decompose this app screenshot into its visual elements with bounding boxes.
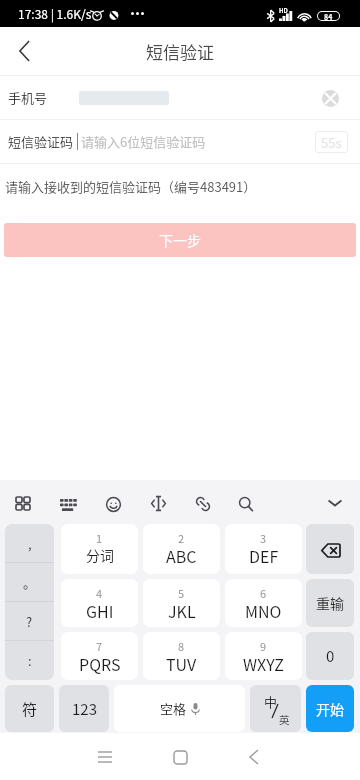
button[interactable]: 8 [143,632,220,680]
staticText: 。 [23,573,37,592]
staticText: DEF [249,544,279,567]
staticText: 2 [178,530,185,546]
staticText: 英 [279,712,290,727]
button[interactable] [306,524,354,574]
staticText: 短信验证 [146,39,214,64]
staticText: JKL [168,599,196,622]
staticText: HD [279,6,288,15]
button[interactable]: Clipboard [187,488,219,520]
staticText: 下一步 [159,230,201,250]
staticText: 55s [321,133,342,152]
button[interactable]: Move cursor [142,487,175,520]
staticText: ? [26,612,33,631]
staticText: 8 [178,638,185,654]
staticText: 请输入6位短信验证码 [81,132,206,151]
staticText: ABC [166,544,197,567]
button[interactable]: 4 [61,579,138,627]
button[interactable]: Home [160,737,200,777]
button[interactable]: 123 [59,685,109,732]
button[interactable]: 7 [61,632,138,680]
button[interactable]: 下一步 [4,223,356,257]
button[interactable]: Clear [318,86,342,110]
staticText: WXYZ [243,652,284,675]
button[interactable]: Emoji [97,488,130,521]
staticText: 重输 [316,593,344,613]
staticText: 空格 [160,699,187,718]
staticText: 123 [72,698,97,720]
staticText: TUV [166,652,197,675]
staticText: 1 [96,530,103,546]
staticText: 9 [260,638,267,654]
staticText: 分词 [86,545,114,565]
staticText: GHI [86,599,114,622]
staticText: 4 [96,585,103,601]
staticText: 中 [264,692,278,711]
staticText: 开始 [316,699,344,719]
staticText: 请输入接收到的短信验证码（编号483491） [5,177,257,196]
button[interactable]: 符 [5,685,54,732]
button[interactable]: ? [5,602,54,640]
button[interactable]: , [5,524,54,562]
button[interactable]: 重输 [306,579,354,627]
button[interactable]: Hide keyboard [319,490,351,516]
button[interactable]: 2 [143,524,220,574]
button[interactable]: 1 [61,524,138,574]
button[interactable]: 5 [143,579,220,627]
button[interactable]: 空格 [114,685,245,732]
staticText: 短信验证码 [8,132,74,151]
button[interactable]: Back [234,737,274,777]
staticText: 符 [22,698,38,720]
button[interactable]: 9 [225,632,302,680]
staticText: 0 [326,645,335,667]
button[interactable]: Back [0,27,48,75]
button[interactable]: Search [230,488,262,520]
staticText: 6 [260,585,267,601]
staticText: 3 [260,530,267,546]
staticText: 84 [324,12,333,20]
button[interactable]: 。 [5,563,54,601]
button[interactable]: 3 [225,524,302,574]
staticText: 5 [178,585,185,601]
button[interactable]: : [5,641,54,680]
button[interactable]: Recents [85,737,125,777]
button[interactable]: 中 [250,685,301,732]
staticText: : [28,651,32,670]
button[interactable]: 开始 [306,685,354,732]
button[interactable]: Keyboard [51,490,86,520]
staticText: MNO [245,599,282,622]
staticText: , [28,534,32,553]
button[interactable]: 0 [306,632,354,680]
staticText: 手机号 [8,88,48,107]
staticText: 17:38 | 1.6K/s [18,5,92,22]
button[interactable]: Apps [7,488,39,519]
button[interactable]: 55s [315,131,348,153]
staticText: PQRS [79,652,121,675]
staticText: 7 [96,638,103,654]
button[interactable]: 6 [225,579,302,627]
